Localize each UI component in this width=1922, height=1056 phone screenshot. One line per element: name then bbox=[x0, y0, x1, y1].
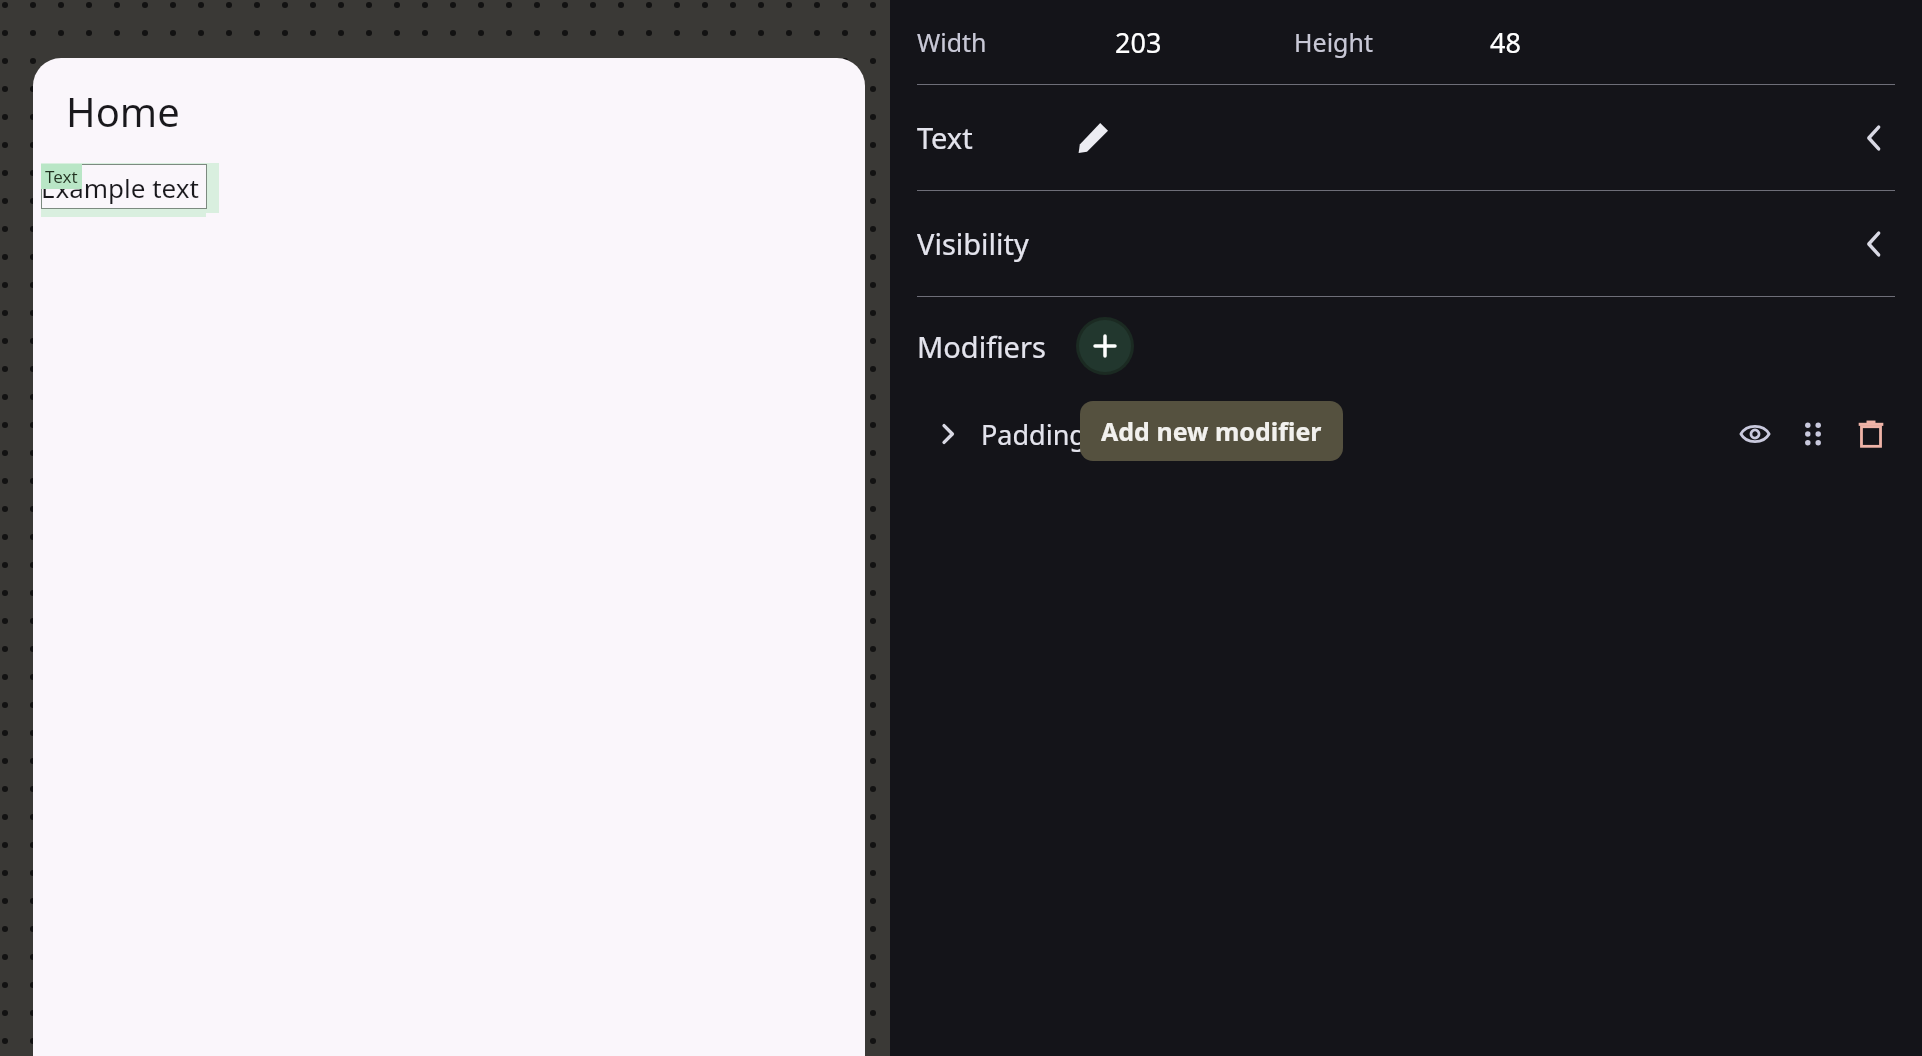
button[interactable]: Toggle visibility bbox=[1732, 411, 1778, 457]
staticText: 203 bbox=[1115, 24, 1162, 61]
button[interactable]: Visibility bbox=[890, 191, 1922, 296]
staticText: Home bbox=[66, 84, 180, 138]
button[interactable]: Add modifier bbox=[1079, 320, 1131, 372]
button[interactable]: Delete modifier bbox=[1848, 411, 1894, 457]
button[interactable]: Collapse Visibility section bbox=[1850, 220, 1898, 268]
button[interactable]: Text bbox=[890, 85, 1922, 190]
button[interactable]: Reorder modifier bbox=[1790, 411, 1836, 457]
button[interactable]: Collapse Text section bbox=[1850, 114, 1898, 162]
staticText: Add new modifier bbox=[1101, 414, 1322, 448]
staticText: Width bbox=[917, 25, 987, 59]
staticText: Text bbox=[45, 165, 78, 188]
button[interactable]: Edit text bbox=[1073, 118, 1113, 158]
staticText: Visibility bbox=[917, 224, 1029, 263]
staticText: Height bbox=[1294, 25, 1373, 59]
button[interactable]: Example text bbox=[41, 164, 207, 209]
button[interactable]: Padding bbox=[890, 395, 1922, 473]
staticText: 48 bbox=[1490, 24, 1521, 61]
button[interactable]: Text bbox=[45, 165, 78, 188]
staticText: Modifiers bbox=[917, 327, 1046, 366]
staticText: Example text bbox=[41, 170, 199, 205]
staticText: Text bbox=[917, 118, 973, 157]
staticText: Padding bbox=[981, 416, 1086, 453]
